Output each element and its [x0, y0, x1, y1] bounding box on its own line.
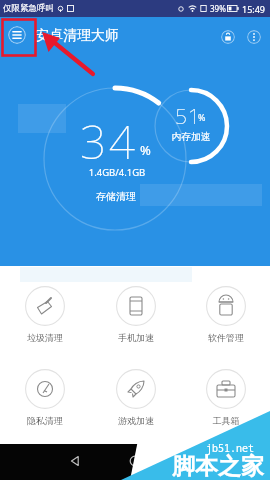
button[interactable]: More options [247, 30, 261, 44]
staticText: 安卓清理大师 [35, 27, 119, 45]
staticText: % [198, 111, 206, 123]
staticText: 内存加速 [155, 131, 227, 143]
button[interactable]: 手机加速 [103, 286, 169, 346]
staticText: 15:49 [242, 3, 266, 15]
staticText: 仅限紧急呼叫 [3, 3, 54, 14]
staticText: 51 [175, 102, 201, 131]
button[interactable]: 软件管理 [193, 286, 259, 346]
button[interactable]: Menu [8, 26, 26, 44]
staticText: 34 [80, 110, 138, 173]
button[interactable]: Recents [178, 444, 212, 478]
staticText: 垃圾清理 [12, 332, 78, 343]
button[interactable]: Lock [221, 30, 235, 44]
staticText: 脚本之家 [172, 452, 264, 480]
button[interactable]: 垃圾清理 [12, 286, 78, 346]
button[interactable]: 隐私清理 [12, 369, 78, 429]
staticText: 隐私清理 [12, 415, 78, 426]
staticText: 手机加速 [103, 332, 169, 343]
button[interactable]: 游戏加速 [103, 369, 169, 429]
button[interactable]: 工具箱 [193, 369, 259, 429]
button[interactable]: Home [118, 444, 152, 478]
staticText: 工具箱 [193, 415, 259, 426]
staticText: 游戏加速 [103, 415, 169, 426]
staticText: % [140, 141, 151, 159]
staticText: 1.4GB/4.1GB [2, 166, 232, 179]
staticText: jb51.net [206, 441, 254, 455]
button[interactable]: Back [58, 444, 92, 478]
staticText: 软件管理 [193, 332, 259, 343]
staticText: 39% [210, 3, 226, 14]
staticText: 存储清理 [1, 190, 231, 203]
